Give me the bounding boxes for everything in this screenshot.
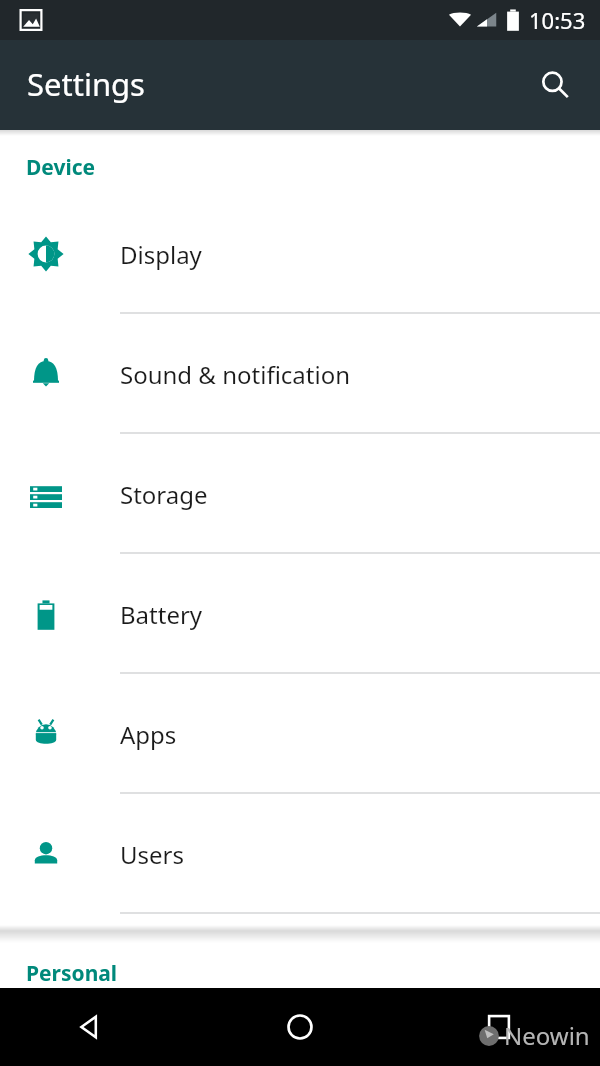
staticText: 10:53 [529,5,586,35]
staticText: Device [26,153,96,182]
button[interactable]: Back [0,988,200,1066]
button[interactable]: Sound & notification [0,314,600,434]
staticText: Apps [120,718,177,751]
button[interactable]: Battery [0,554,600,674]
staticText: Settings [27,63,145,105]
staticText: Users [120,838,184,871]
staticText: Neowin [504,1019,590,1052]
button[interactable]: Display [0,194,600,314]
button[interactable]: Search [526,56,584,114]
button[interactable]: Users [0,794,600,914]
button[interactable]: Storage [0,434,600,554]
staticText: Personal [26,959,118,988]
button[interactable]: Apps [0,674,600,794]
staticText: Battery [120,598,203,631]
button[interactable]: Home [200,988,400,1066]
staticText: Display [120,238,202,271]
staticText: Storage [120,478,208,511]
staticText: Sound & notification [120,358,351,391]
button[interactable]: Recent apps [400,988,600,1066]
